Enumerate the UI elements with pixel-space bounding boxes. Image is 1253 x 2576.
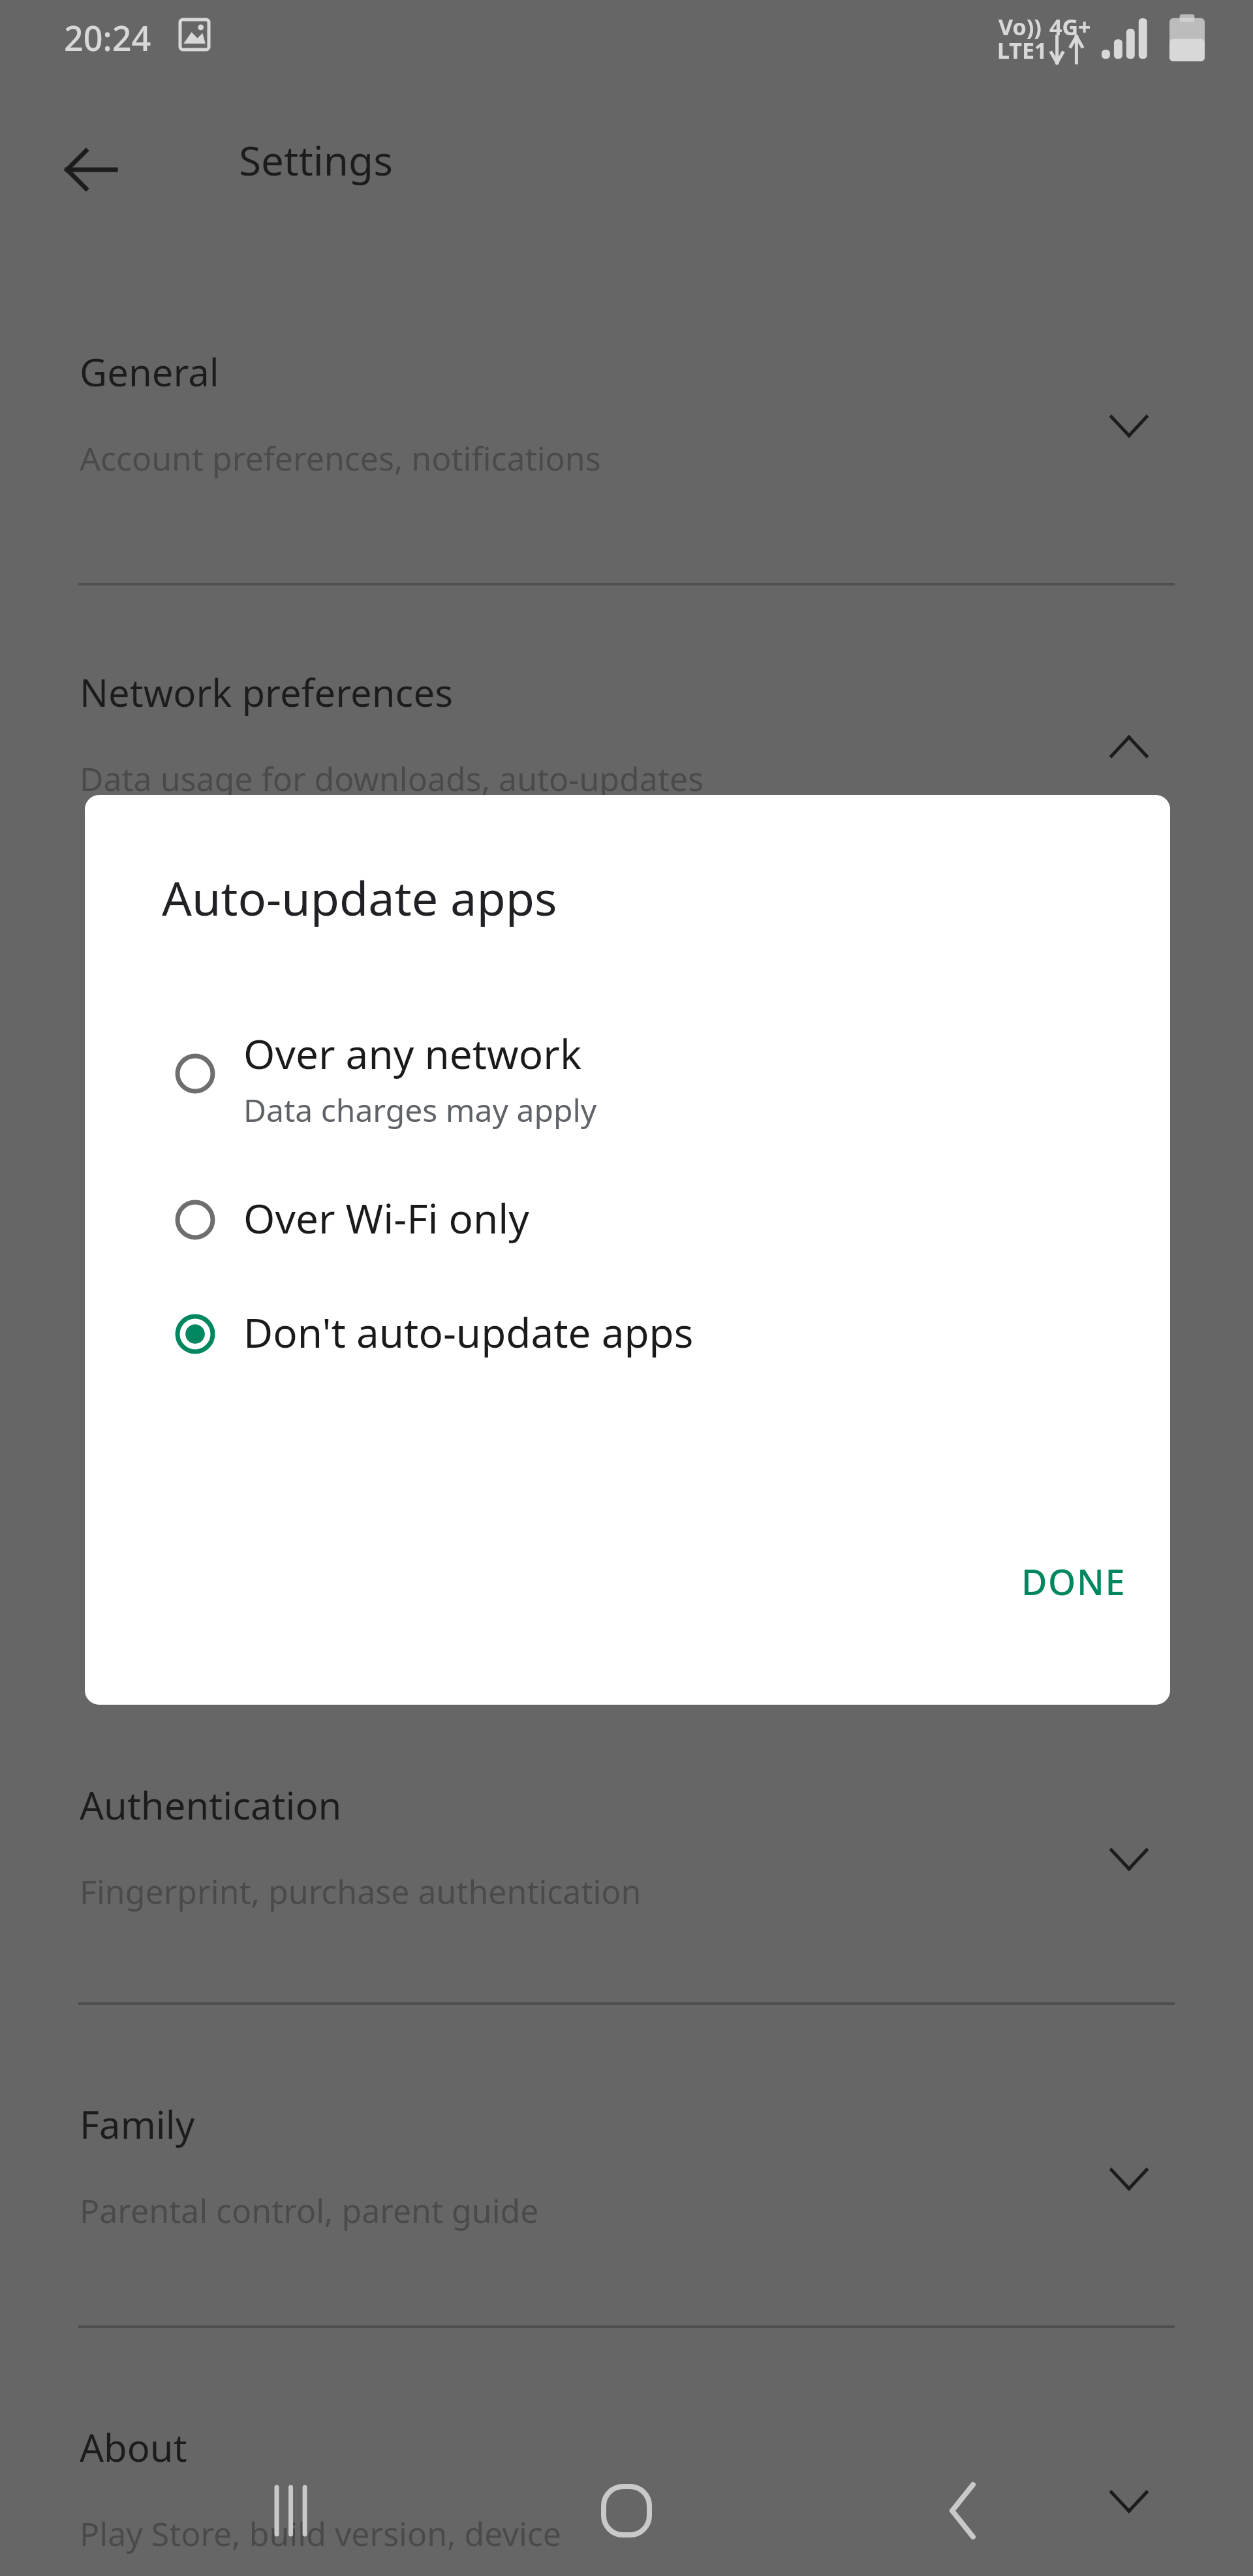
staticText: Network preferences	[80, 666, 453, 718]
staticText: 20:24	[64, 14, 151, 61]
button[interactable]: Over any network	[85, 992, 1170, 1155]
staticText: Authentication	[80, 1779, 342, 1831]
button[interactable]: Recent apps	[245, 2465, 336, 2556]
staticText: Over Wi-Fi only	[243, 1190, 529, 1245]
staticText: Settings	[239, 132, 393, 187]
staticText: Play Store, build version, device	[80, 2511, 561, 2556]
button[interactable]: Don't auto-update apps	[85, 1289, 1170, 1406]
staticText: General	[80, 346, 219, 397]
button[interactable]: Back	[51, 129, 132, 210]
staticText: Over any network	[243, 1026, 582, 1081]
staticText: Auto-update apps	[162, 865, 557, 929]
button[interactable]	[0, 2072, 1253, 2247]
staticText: Vo))	[998, 12, 1042, 42]
staticText: Parental control, parent guide	[80, 2188, 539, 2233]
staticText: 4G+	[1049, 12, 1091, 42]
staticText: About	[80, 2421, 187, 2473]
staticText: Data usage for downloads, auto-updates	[80, 756, 704, 801]
staticText: Family	[80, 2098, 195, 2150]
button[interactable]: Back	[917, 2465, 1008, 2556]
staticText: Don't auto-update apps	[243, 1305, 694, 1359]
button[interactable]: Over Wi-Fi only	[85, 1175, 1170, 1286]
staticText: Data charges may apply	[243, 1089, 597, 1131]
staticText: Account preferences, notifications	[80, 436, 601, 480]
button[interactable]	[0, 1753, 1253, 1928]
button[interactable]	[0, 320, 1253, 495]
staticText: DONE	[1021, 1557, 1126, 1606]
button[interactable]: Home	[581, 2465, 672, 2556]
button[interactable]	[0, 2395, 1253, 2570]
button[interactable]	[0, 640, 1253, 815]
staticText: LTE1	[997, 35, 1047, 65]
button[interactable]: DONE	[998, 1539, 1149, 1624]
staticText: Fingerprint, purchase authentication	[80, 1869, 642, 1914]
